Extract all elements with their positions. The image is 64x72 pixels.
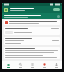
button[interactable]: Orders bbox=[26, 61, 38, 69]
button[interactable]: App logo bbox=[2, 6, 62, 13]
button[interactable]: Home bbox=[2, 61, 14, 69]
button[interactable]: Action bbox=[53, 8, 60, 11]
button[interactable]: Alert bbox=[4, 20, 60, 25]
button[interactable]: Filter bbox=[4, 27, 60, 35]
button[interactable]: Alerts bbox=[38, 61, 50, 69]
other: App logo bbox=[4, 8, 8, 12]
button[interactable] bbox=[4, 47, 60, 59]
other: Alert bbox=[5, 21, 8, 24]
button[interactable]: More options bbox=[57, 15, 60, 18]
button[interactable]: Search bbox=[14, 61, 26, 69]
button[interactable]: More options bbox=[2, 13, 62, 19]
button[interactable]: Profile bbox=[50, 61, 62, 69]
button[interactable] bbox=[4, 37, 60, 45]
